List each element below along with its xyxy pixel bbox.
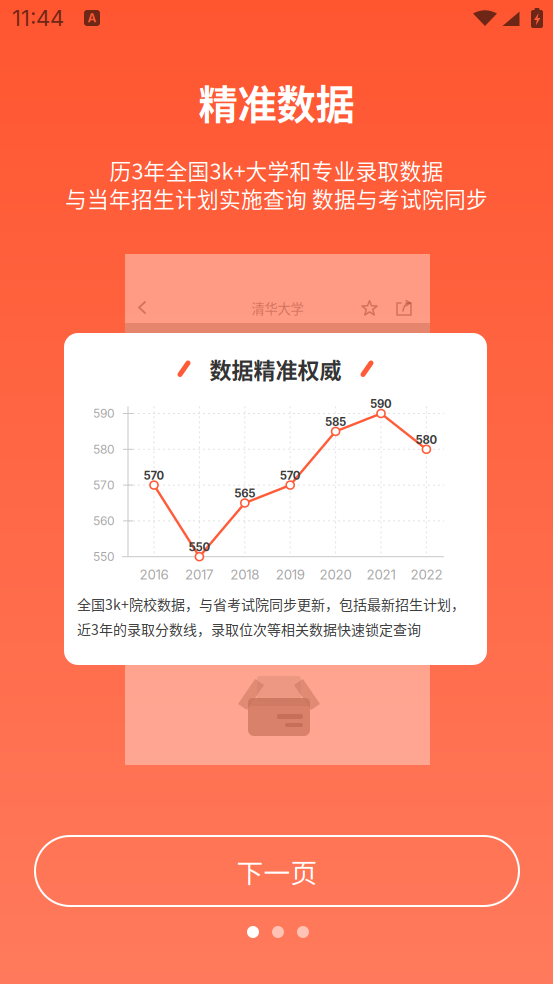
staticText: 下一页 (236, 852, 317, 890)
staticText: 与当年招生计划实施查询 数据与考试院同步 (65, 182, 488, 214)
staticText: 585 (325, 415, 346, 429)
staticText: 数据精准权威 (209, 353, 341, 385)
staticText: 历3年全国3k+大学和专业录取数据 (109, 154, 443, 186)
staticText: 2016 (139, 567, 168, 583)
button[interactable]: 下一页 (35, 836, 519, 906)
staticText: 570 (143, 469, 164, 482)
staticText: 580 (415, 433, 437, 447)
staticText: 2020 (320, 567, 352, 583)
staticText: 精准数据 (198, 73, 354, 130)
staticText: 560 (93, 514, 115, 528)
staticText: 2018 (230, 567, 259, 583)
staticText: 2021 (366, 567, 395, 583)
staticText: 590 (93, 406, 115, 421)
staticText: 590 (370, 397, 392, 411)
staticText: 2019 (276, 567, 305, 583)
staticText: 570 (280, 469, 301, 482)
staticText: 11:44 (12, 5, 64, 31)
staticText: 570 (93, 478, 115, 492)
staticText: 2022 (410, 567, 442, 583)
staticText: 550 (93, 549, 115, 564)
staticText: 580 (93, 442, 115, 456)
staticText: 550 (188, 540, 210, 554)
staticText: 清华大学 (251, 298, 303, 318)
staticText: 全国3k+院校数据，与省考试院同步更新，包括最新招生计划， (77, 594, 465, 614)
staticText: A (87, 11, 96, 25)
staticText: 565 (234, 487, 255, 500)
staticText: 2017 (185, 567, 214, 583)
staticText: 近3年的录取分数线，录取位次等相关数据快速锁定查询 (77, 619, 421, 639)
